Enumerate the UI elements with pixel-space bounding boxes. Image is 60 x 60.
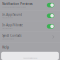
- staticText: In-App/Sound: [2, 13, 22, 16]
- staticText: Tap and hold to speak: [22, 57, 37, 59]
- staticText: Notification Previews: [2, 2, 32, 6]
- button[interactable]: In-App/Vibrate: [0, 21, 60, 31]
- button[interactable]: In-App/Sound: [0, 11, 60, 21]
- button[interactable]: Sync'd Contacts: [0, 32, 60, 42]
- button[interactable]: Notification Previews: [0, 0, 60, 10]
- staticText: Sync'd Contacts: [2, 34, 21, 37]
- button[interactable]: Help: [0, 42, 60, 51]
- staticText: Help: [2, 46, 9, 49]
- staticText: In-App/Vibrate: [2, 23, 23, 27]
